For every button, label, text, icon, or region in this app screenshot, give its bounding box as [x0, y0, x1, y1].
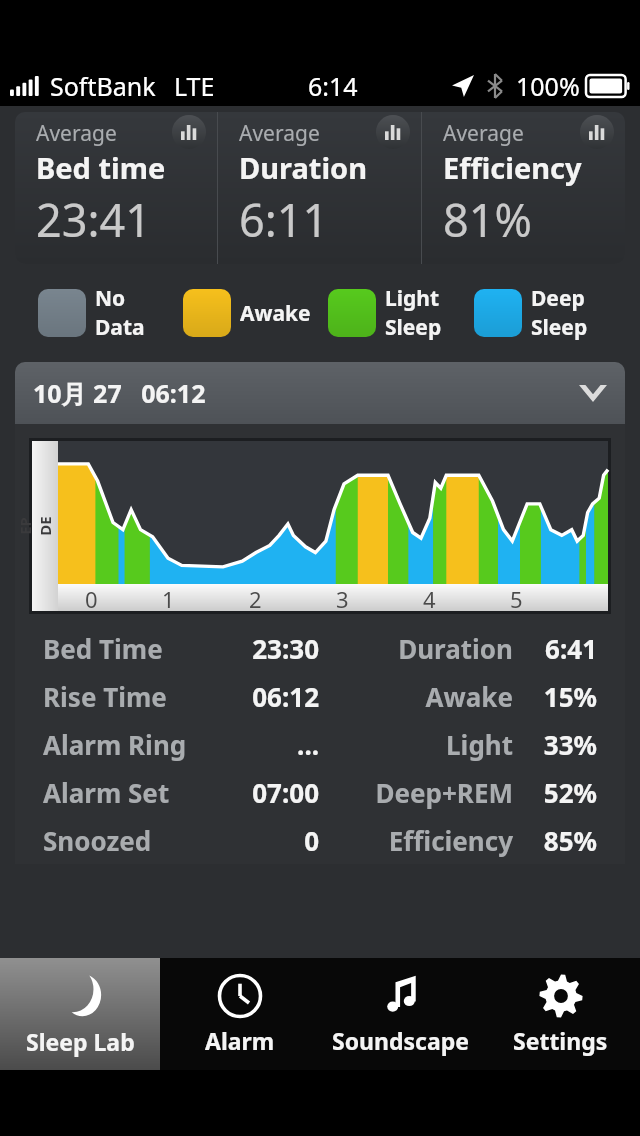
button[interactable]: Bed Time	[43, 624, 597, 672]
staticText: Bed Time	[43, 631, 199, 666]
staticText: Average	[239, 119, 320, 148]
staticText: Sleep	[531, 313, 588, 342]
staticText: SoftBank	[50, 69, 156, 103]
staticText: Duration	[239, 148, 368, 187]
staticText: 5	[510, 584, 523, 611]
staticText: Settings	[513, 1025, 608, 1056]
staticText: 0	[199, 823, 319, 858]
staticText: Bed time	[36, 148, 166, 187]
staticText: SLEEP DEPTH	[15, 513, 95, 539]
staticText: Sleep Lab	[26, 1026, 135, 1057]
button[interactable]: Average	[15, 112, 625, 264]
button[interactable]: Snoozed	[43, 816, 597, 864]
staticText: 81%	[443, 189, 532, 250]
button[interactable]: No	[38, 284, 183, 342]
staticText: 2	[249, 584, 262, 611]
staticText: 15%	[525, 679, 597, 714]
staticText: LTE	[174, 69, 215, 103]
staticText: 85%	[525, 823, 597, 858]
button[interactable]: Sleep Lab	[0, 958, 160, 1070]
staticText: Awake	[333, 679, 513, 714]
staticText: 52%	[525, 775, 597, 810]
staticText: Light	[385, 284, 440, 313]
staticText: 06:12	[199, 679, 319, 714]
button[interactable]: Awake	[183, 284, 328, 342]
staticText: 07:00	[199, 775, 319, 810]
staticText: Alarm	[205, 1025, 275, 1056]
staticText: Rise Time	[43, 679, 199, 714]
staticText: Snoozed	[43, 823, 199, 858]
staticText: Average	[36, 119, 117, 148]
staticText: Deep	[531, 284, 585, 313]
staticText: 10月 27 06:12	[33, 376, 206, 410]
staticText: Deep+REM	[333, 775, 513, 810]
staticText: Data	[95, 313, 145, 342]
staticText: 33%	[525, 727, 597, 762]
staticText: 100%	[516, 69, 580, 103]
button[interactable]: Average	[15, 112, 217, 264]
staticText: No	[95, 284, 126, 313]
staticText: ...	[199, 727, 319, 762]
button[interactable]: Alarm	[160, 958, 320, 1070]
button[interactable]: Light	[328, 284, 474, 342]
button[interactable]: Soundscape	[320, 958, 480, 1070]
staticText: 6:14	[308, 69, 358, 103]
button[interactable]: Deep	[474, 284, 620, 342]
staticText: 3	[336, 584, 349, 611]
button[interactable]: Average	[422, 112, 625, 264]
staticText: Efficiency	[333, 823, 513, 858]
staticText: 1	[162, 584, 175, 611]
button[interactable]: 10月 27 06:12	[33, 362, 607, 424]
button[interactable]: Show Duration chart	[376, 115, 410, 149]
staticText: 6:41	[525, 631, 597, 666]
button[interactable]: Average	[218, 112, 421, 264]
staticText: Sleep	[385, 313, 442, 342]
staticText: 4	[423, 584, 436, 611]
staticText: 23:30	[199, 631, 319, 666]
staticText: Soundscape	[332, 1025, 469, 1056]
button[interactable]: Rise Time	[43, 672, 597, 720]
staticText: Light	[333, 727, 513, 762]
staticText: Efficiency	[443, 148, 582, 187]
staticText: 0	[85, 584, 98, 611]
button[interactable]: Alarm Ring	[43, 720, 597, 768]
staticText: 23:41	[36, 189, 152, 250]
button[interactable]: Show Bed time chart	[172, 115, 206, 149]
button[interactable]: Settings	[480, 958, 640, 1070]
staticText: Average	[443, 119, 524, 148]
staticText: 6:11	[239, 189, 329, 250]
staticText: Awake	[240, 299, 311, 328]
staticText: Alarm Set	[43, 775, 199, 810]
button[interactable]: Show Efficiency chart	[580, 115, 614, 149]
staticText: Alarm Ring	[43, 727, 199, 762]
other: Collapse	[579, 385, 607, 402]
staticText: Duration	[333, 631, 513, 666]
button[interactable]: Alarm Set	[43, 768, 597, 816]
